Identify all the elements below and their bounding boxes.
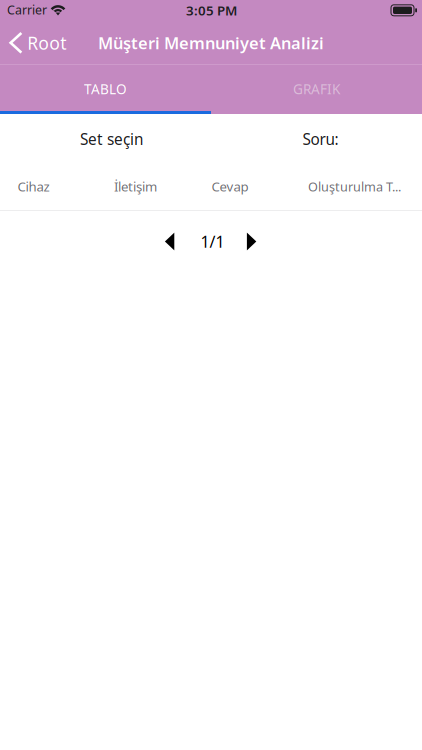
button[interactable]: GRAFIK [211, 65, 422, 112]
staticText: Müşteri Memnuniyet Analizi [98, 32, 324, 54]
staticText: TABLO [84, 80, 127, 98]
staticText: Set seçin [80, 129, 143, 149]
button[interactable]: Previous page [152, 224, 187, 259]
staticText: 1/1 [200, 231, 224, 252]
button[interactable]: TABLO [0, 65, 211, 112]
staticText: Root [27, 31, 66, 55]
button[interactable]: Soru: [215, 114, 422, 164]
staticText: Oluşturulma T... [308, 178, 401, 195]
staticText: 3:05 PM [186, 1, 237, 19]
button[interactable]: Set seçin [6, 114, 217, 164]
button[interactable]: Next page [234, 224, 269, 259]
staticText: Cihaz [17, 177, 49, 195]
staticText: Soru: [302, 129, 338, 149]
staticText: Carrier [7, 1, 47, 18]
button[interactable]: Root [0, 22, 76, 64]
staticText: İletişim [114, 177, 157, 195]
staticText: GRAFIK [293, 80, 340, 98]
staticText: Cevap [211, 177, 248, 195]
